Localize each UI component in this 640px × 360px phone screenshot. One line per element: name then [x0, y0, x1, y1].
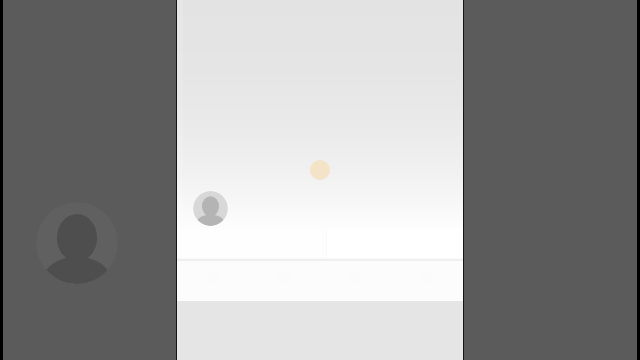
button[interactable]: Account avatar [36, 202, 118, 284]
button[interactable]: Contact avatar [193, 191, 228, 226]
button[interactable]: Reaction [310, 160, 330, 180]
button[interactable]: Reaction [177, 0, 463, 229]
